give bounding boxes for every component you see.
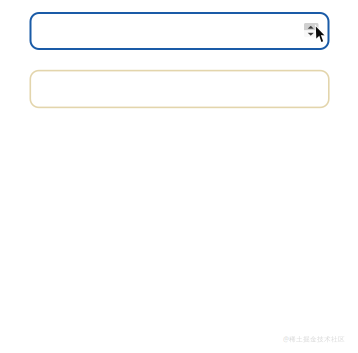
button[interactable]: Second input	[30, 71, 329, 107]
staticText: @稀土掘金技术社区	[283, 335, 345, 343]
button[interactable]: Step value	[304, 23, 318, 37]
button[interactable]: Number input, focused	[30, 13, 328, 49]
